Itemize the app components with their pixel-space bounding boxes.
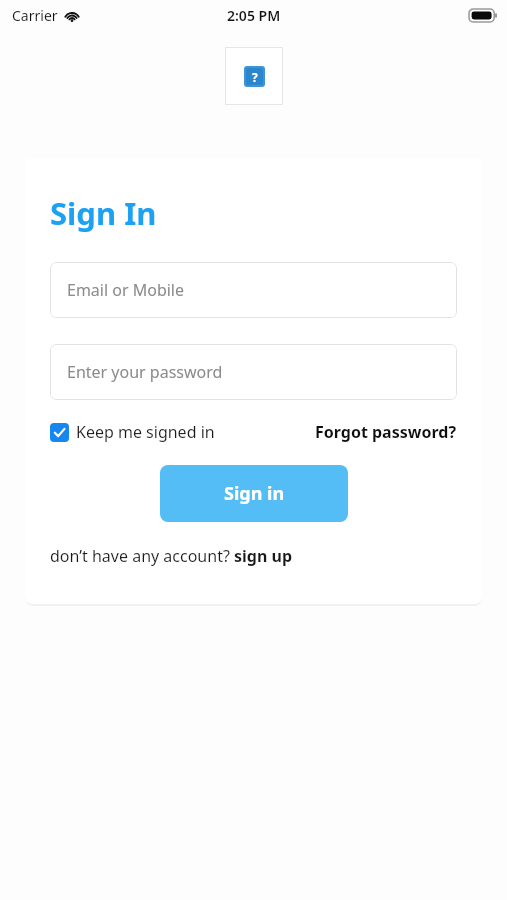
staticText: Carrier <box>12 6 58 25</box>
staticText: Sign In <box>50 192 157 234</box>
staticText: don’t have any account? sign up <box>50 545 293 567</box>
button[interactable]: Enter your password <box>50 344 457 400</box>
staticText: Email or Mobile <box>67 279 185 301</box>
staticText: Keep me signed in <box>76 421 215 443</box>
button[interactable]: Sign in <box>160 465 348 522</box>
button[interactable]: Email or Mobile <box>50 262 457 318</box>
button[interactable]: Forgot password? <box>315 421 457 443</box>
staticText: Forgot password? <box>315 421 457 443</box>
staticText: 2:05 PM <box>227 6 281 25</box>
staticText: Enter your password <box>67 361 223 383</box>
staticText: ? <box>252 69 258 85</box>
button[interactable]: Keep me signed in checkbox <box>50 421 215 443</box>
staticText: Sign in <box>224 481 285 506</box>
button[interactable]: don’t have any account? sign up <box>50 545 293 567</box>
other: Keep me signed in checkbox <box>50 423 69 442</box>
